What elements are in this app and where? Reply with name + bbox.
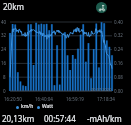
button[interactable]: 20km <box>3 1 24 12</box>
staticText: 32 <box>1 32 7 38</box>
staticText: 0.08 <box>114 74 123 80</box>
staticText: 24 <box>1 46 7 52</box>
staticText: -mAh/km <box>87 113 122 124</box>
staticText: 16:59:19 <box>66 96 84 102</box>
staticText: 16:20:50 <box>4 96 22 102</box>
staticText: 0.24 <box>114 46 123 52</box>
staticText: 0.32 <box>114 32 123 38</box>
staticText: 17:18:34 <box>97 96 115 102</box>
staticText: 0 <box>3 88 6 94</box>
button[interactable]: Activity type: scooter <box>96 2 107 13</box>
staticText: 20.07.2020 <box>91 87 112 92</box>
staticText: 0.00 <box>114 88 123 94</box>
staticText: km/h <box>21 103 34 110</box>
staticText: 0.16 <box>114 60 123 66</box>
staticText: 16 <box>1 60 7 66</box>
staticText: 00:57:44 <box>44 113 76 124</box>
staticText: Watt <box>42 103 53 110</box>
staticText: 20km <box>3 1 24 12</box>
staticText: 16:40:04 <box>35 96 53 102</box>
staticText: 20,13km <box>2 113 35 124</box>
staticText: 40 <box>1 19 7 25</box>
staticText: 0.40 <box>114 19 123 25</box>
staticText: 8 <box>3 74 6 80</box>
